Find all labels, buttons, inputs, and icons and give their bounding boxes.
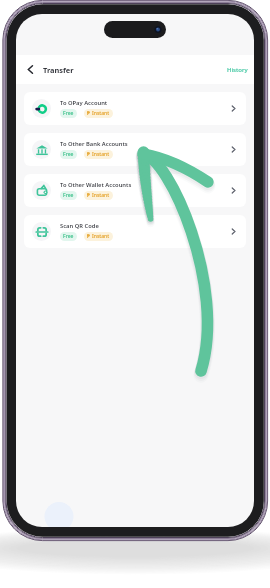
staticText: Instant <box>92 233 110 240</box>
staticText: Instant <box>92 192 110 199</box>
button[interactable]: To Other Wallet Accounts <box>24 174 246 207</box>
button[interactable]: Scan QR Code <box>24 215 246 248</box>
staticText: ₱ <box>87 110 90 117</box>
staticText: ₱ <box>87 192 90 199</box>
button[interactable]: Back <box>23 62 38 77</box>
staticText: To Other Bank Accounts <box>60 140 128 148</box>
button[interactable]: To OPay Account <box>24 92 246 125</box>
staticText: Scan QR Code <box>60 222 99 230</box>
button[interactable]: History <box>221 61 254 79</box>
staticText: Instant <box>92 151 110 158</box>
staticText: Instant <box>92 110 110 117</box>
staticText: Free <box>63 233 74 240</box>
button[interactable]: To Other Bank Accounts <box>24 133 246 166</box>
staticText: Free <box>63 110 74 117</box>
staticText: History <box>227 66 248 74</box>
staticText: ₱ <box>87 151 90 158</box>
staticText: ₱ <box>87 233 90 240</box>
staticText: To OPay Account <box>60 99 108 107</box>
staticText: To Other Wallet Accounts <box>60 181 132 189</box>
staticText: Free <box>63 192 74 199</box>
staticText: Transfer <box>43 65 74 75</box>
staticText: Free <box>63 151 74 158</box>
